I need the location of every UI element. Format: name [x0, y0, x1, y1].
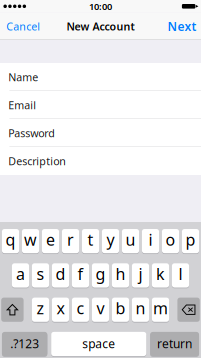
- staticText: h: [115, 263, 125, 284]
- staticText: p: [185, 229, 195, 250]
- button[interactable]: d: [52, 263, 69, 287]
- staticText: s: [36, 263, 44, 284]
- button[interactable]: Description: [0, 147, 201, 175]
- staticText: t: [87, 229, 93, 250]
- staticText: 10:00: [89, 0, 112, 12]
- button[interactable]: k: [152, 263, 169, 287]
- staticText: g: [95, 263, 105, 284]
- button[interactable]: u: [122, 229, 139, 253]
- button[interactable]: f: [72, 263, 89, 287]
- button[interactable]: o: [162, 229, 179, 253]
- button[interactable]: e: [42, 229, 59, 253]
- button[interactable]: y: [102, 229, 119, 253]
- button[interactable]: n: [132, 298, 149, 322]
- button[interactable]: Cancel: [0, 13, 46, 40]
- staticText: i: [148, 229, 152, 250]
- staticText: r: [67, 229, 74, 250]
- staticText: Description: [8, 154, 66, 168]
- button[interactable]: a: [12, 263, 29, 287]
- staticText: v: [96, 297, 104, 319]
- staticText: w: [24, 229, 37, 250]
- button[interactable]: q: [2, 229, 19, 253]
- staticText: Email: [8, 98, 36, 112]
- staticText: o: [165, 229, 175, 250]
- button[interactable]: c: [72, 298, 89, 322]
- staticText: c: [76, 297, 84, 319]
- button[interactable]: w: [22, 229, 39, 253]
- staticText: Cancel: [6, 19, 40, 33]
- button[interactable]: z: [32, 298, 49, 322]
- staticText: Next: [168, 18, 197, 34]
- button[interactable]: m: [152, 298, 169, 322]
- button[interactable]: r: [62, 229, 79, 253]
- staticText: New Account: [66, 19, 134, 33]
- button[interactable]: Delete: [177, 298, 200, 322]
- staticText: Name: [8, 70, 38, 84]
- staticText: b: [115, 297, 125, 319]
- button[interactable]: x: [52, 298, 69, 322]
- staticText: z: [36, 297, 44, 319]
- staticText: q: [5, 229, 15, 250]
- button[interactable]: l: [172, 263, 189, 287]
- staticText: y: [106, 229, 114, 250]
- button[interactable]: g: [92, 263, 109, 287]
- staticText: Password: [8, 126, 55, 140]
- button[interactable]: return: [150, 332, 199, 356]
- button[interactable]: b: [112, 298, 129, 322]
- staticText: space: [82, 336, 115, 351]
- button[interactable]: j: [132, 263, 149, 287]
- button[interactable]: p: [182, 229, 199, 253]
- staticText: m: [153, 297, 168, 319]
- button[interactable]: .?123: [2, 332, 47, 356]
- button[interactable]: t: [82, 229, 99, 253]
- staticText: a: [16, 263, 25, 284]
- staticText: n: [135, 297, 145, 319]
- button[interactable]: s: [32, 263, 49, 287]
- staticText: return: [157, 336, 192, 351]
- staticText: u: [125, 229, 135, 250]
- staticText: e: [46, 229, 55, 250]
- staticText: j: [138, 263, 142, 284]
- staticText: l: [178, 263, 182, 284]
- button[interactable]: Next: [162, 13, 201, 40]
- button[interactable]: v: [92, 298, 109, 322]
- button[interactable]: Shift: [1, 298, 24, 322]
- staticText: d: [55, 263, 65, 284]
- staticText: f: [77, 263, 83, 284]
- button[interactable]: space: [51, 332, 146, 356]
- button[interactable]: i: [142, 229, 159, 253]
- button[interactable]: Name: [0, 63, 201, 91]
- button[interactable]: Password: [0, 119, 201, 147]
- staticText: .?123: [10, 336, 39, 351]
- button[interactable]: Email: [0, 91, 201, 119]
- button[interactable]: h: [112, 263, 129, 287]
- staticText: k: [156, 263, 165, 284]
- staticText: x: [56, 297, 64, 319]
